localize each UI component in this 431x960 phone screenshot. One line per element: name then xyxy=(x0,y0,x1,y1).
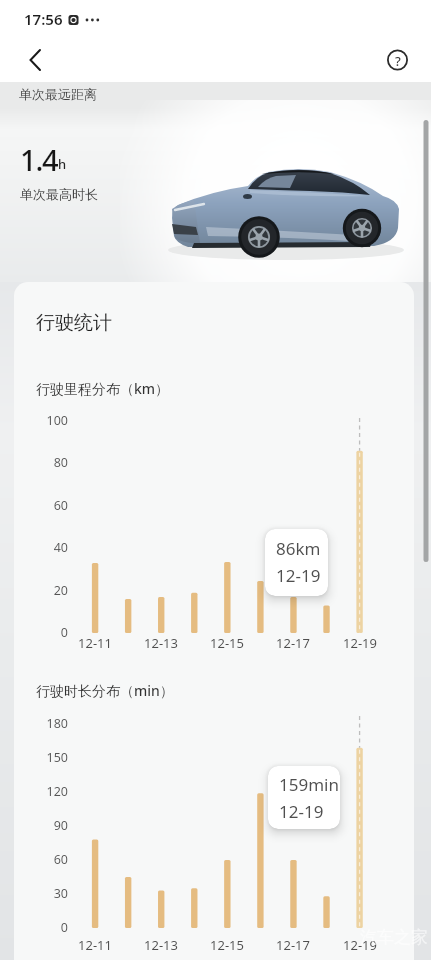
staticText: 12-15 xyxy=(210,936,244,954)
staticText: 12-19 xyxy=(343,936,377,954)
staticText: 12-13 xyxy=(144,936,178,954)
staticText: 159min xyxy=(279,773,339,796)
staticText: 0 xyxy=(60,624,68,641)
staticText: 60 xyxy=(53,497,68,514)
staticText: 12-19 xyxy=(343,634,377,652)
staticText: 12-13 xyxy=(144,634,178,652)
staticText: 20 xyxy=(53,582,68,599)
staticText: 120 xyxy=(46,783,68,800)
staticText: 17:56 xyxy=(24,9,63,29)
staticText: 80 xyxy=(53,454,68,471)
staticText: 1.4 xyxy=(20,140,58,179)
staticText: 30 xyxy=(53,885,68,902)
button[interactable]: 159min xyxy=(268,766,340,829)
staticText: 12-11 xyxy=(78,634,112,652)
staticText: 单次最远距离 xyxy=(19,86,97,102)
staticText: ? xyxy=(395,52,401,70)
staticText: 12-15 xyxy=(210,634,244,652)
staticText: 12-17 xyxy=(276,936,310,954)
staticText: 0 xyxy=(60,919,68,936)
staticText: 行驶里程分布（km） xyxy=(36,379,170,398)
staticText: 90 xyxy=(53,817,68,834)
staticText: 12-11 xyxy=(78,936,112,954)
staticText: 180 xyxy=(46,715,68,732)
staticText: 12-19 xyxy=(276,564,321,587)
staticText: 行驶时长分布（min） xyxy=(36,681,174,700)
staticText: 行驶统计 xyxy=(36,311,112,335)
staticText: 100 xyxy=(46,412,68,429)
staticText: 150 xyxy=(46,749,68,766)
staticText: 86km xyxy=(276,537,321,560)
staticText: 60 xyxy=(53,851,68,868)
button[interactable] xyxy=(18,44,52,78)
staticText: 汽车之家 xyxy=(360,927,428,948)
staticText: 12-17 xyxy=(276,634,310,652)
button[interactable]: 86km xyxy=(265,529,328,596)
staticText: 单次最高时长 xyxy=(20,186,98,202)
staticText: h xyxy=(58,155,67,173)
staticText: 40 xyxy=(53,539,68,556)
button[interactable]: ? xyxy=(387,50,408,71)
staticText: 12-19 xyxy=(279,800,324,823)
